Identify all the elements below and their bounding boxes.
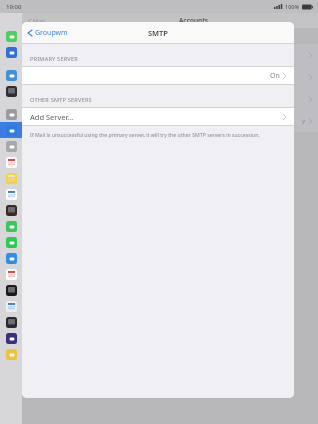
button[interactable]: On <box>22 67 294 84</box>
staticText: 19:00 <box>6 3 22 11</box>
button[interactable]: Settings category <box>0 298 22 314</box>
button[interactable]: Settings category <box>0 282 22 298</box>
button[interactable]: Settings category <box>0 170 22 186</box>
button[interactable]: Settings category <box>0 202 22 218</box>
button[interactable]: Settings category <box>0 28 22 44</box>
button[interactable]: Mail <box>22 14 51 28</box>
button[interactable]: Settings category <box>0 67 22 83</box>
staticText: Accounts <box>179 16 209 25</box>
button[interactable]: Settings category <box>0 186 22 202</box>
button[interactable]: Settings category <box>0 218 22 234</box>
button[interactable]: Settings category <box>0 122 22 138</box>
staticText: Mail <box>33 17 45 25</box>
staticText: Groupwm <box>35 28 68 38</box>
button[interactable]: Settings category <box>0 250 22 266</box>
staticText: SMTP <box>148 28 168 38</box>
button[interactable]: Add Server... <box>22 108 294 125</box>
button[interactable]: Settings category <box>0 83 22 99</box>
button[interactable]: Settings category <box>0 106 22 122</box>
staticText: y <box>302 117 306 125</box>
staticText: 100% <box>285 3 300 10</box>
button[interactable]: Settings category <box>0 346 22 362</box>
staticText: PRIMARY SERVER <box>30 55 78 63</box>
staticText: If Mail is unsuccessful using the primar… <box>30 131 260 138</box>
staticText: OTHER SMTP SERVERS <box>30 96 92 104</box>
button[interactable]: Settings category <box>0 330 22 346</box>
button[interactable]: Settings category <box>0 154 22 170</box>
button[interactable]: Settings category <box>0 234 22 250</box>
staticText: On <box>270 71 280 81</box>
button[interactable]: Settings category <box>0 314 22 330</box>
button[interactable]: Groupwm <box>22 24 74 42</box>
staticText: Add Server... <box>30 112 74 122</box>
button[interactable]: Settings category <box>0 266 22 282</box>
button[interactable]: Settings category <box>0 44 22 60</box>
button[interactable]: Settings category <box>0 138 22 154</box>
